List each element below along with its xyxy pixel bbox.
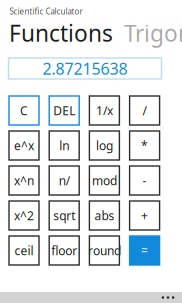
button[interactable]: C — [9, 96, 39, 125]
staticText: Trigonometry — [124, 18, 182, 48]
staticText: x^2 — [14, 207, 34, 223]
staticText: floor — [51, 242, 77, 258]
staticText: DEL — [53, 102, 75, 118]
staticText: = — [141, 242, 148, 258]
staticText: n/ — [59, 172, 70, 188]
staticText: 1/x — [96, 102, 113, 118]
button[interactable]: = — [130, 236, 160, 265]
button[interactable]: mod — [89, 166, 119, 195]
staticText: abs — [94, 207, 114, 223]
button[interactable]: ln — [49, 131, 79, 160]
button[interactable]: + — [130, 201, 160, 230]
staticText: ceil — [14, 242, 33, 258]
staticText: x^n — [14, 172, 34, 188]
staticText: Functions — [9, 18, 113, 48]
staticText: round — [88, 242, 121, 258]
staticText: - — [143, 172, 147, 188]
staticText: log — [96, 137, 113, 153]
staticText: * — [141, 137, 148, 153]
button[interactable]: abs — [89, 201, 119, 230]
button[interactable]: Functions — [9, 18, 113, 48]
button[interactable]: - — [130, 166, 160, 195]
staticText: mod — [92, 172, 117, 188]
staticText: 2.87215638 — [42, 58, 127, 79]
button[interactable]: e^x — [9, 131, 39, 160]
button[interactable]: round — [89, 236, 119, 265]
button[interactable]: More — [154, 292, 182, 303]
staticText: Scientific Calculator — [9, 6, 82, 17]
staticText: + — [141, 207, 148, 223]
staticText: sqrt — [53, 207, 75, 223]
button[interactable]: log — [89, 131, 119, 160]
button[interactable]: n/ — [49, 166, 79, 195]
button[interactable]: * — [130, 131, 160, 160]
staticText: C — [20, 102, 28, 118]
staticText: / — [143, 102, 147, 118]
button[interactable]: 1/x — [89, 96, 119, 125]
staticText: ln — [59, 137, 69, 153]
button[interactable]: x^n — [9, 166, 39, 195]
button[interactable]: sqrt — [49, 201, 79, 230]
button[interactable]: ceil — [9, 236, 39, 265]
button[interactable]: x^2 — [9, 201, 39, 230]
button[interactable]: Trigonometry — [124, 18, 182, 48]
staticText: e^x — [14, 137, 34, 153]
button[interactable]: / — [130, 96, 160, 125]
button[interactable]: DEL — [49, 96, 79, 125]
button[interactable]: floor — [49, 236, 79, 265]
